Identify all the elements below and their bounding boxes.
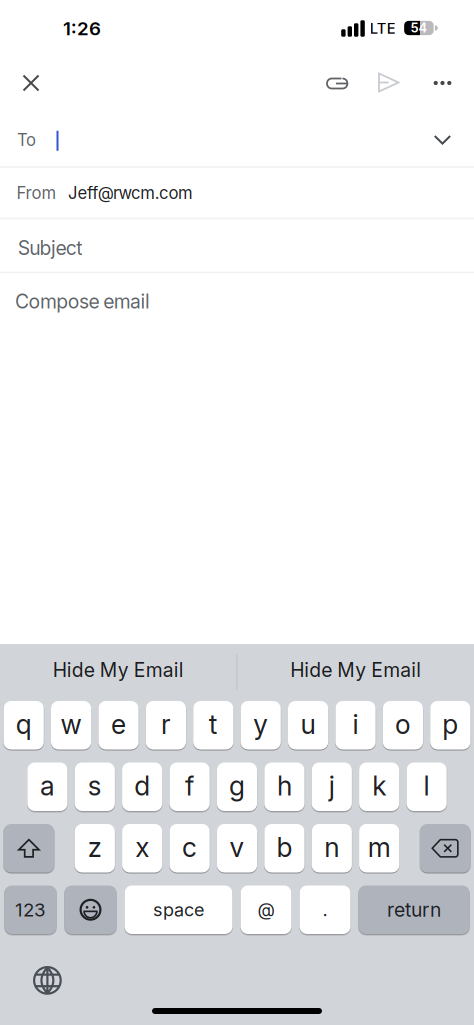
button[interactable]: u (288, 701, 328, 749)
button[interactable]: space (124, 885, 232, 934)
button[interactable]: @ (240, 885, 291, 934)
button[interactable]: d (122, 762, 162, 811)
staticText: x (135, 831, 149, 863)
staticText: To (17, 130, 36, 150)
button[interactable]: l (406, 762, 447, 811)
staticText: b (276, 831, 292, 863)
button[interactable]: o (383, 701, 423, 749)
button[interactable]: p (430, 701, 470, 749)
button[interactable]: w (51, 701, 91, 749)
staticText: LTE (370, 20, 396, 37)
staticText: r (161, 708, 171, 740)
button[interactable]: Compose email (0, 272, 474, 326)
button[interactable]: k (359, 762, 399, 811)
button[interactable]: Numbers (4, 885, 56, 934)
button[interactable]: Hide My Email (237, 644, 474, 700)
staticText: j (329, 770, 335, 802)
staticText: 123 (15, 898, 46, 921)
staticText: d (134, 770, 150, 802)
button[interactable]: x (122, 824, 162, 872)
staticText: . (322, 899, 327, 921)
staticText: m (368, 831, 391, 863)
staticText: g (229, 770, 245, 802)
staticText: k (372, 770, 386, 802)
button[interactable]: a (27, 762, 67, 811)
staticText: l (424, 770, 430, 802)
button[interactable]: t (193, 701, 233, 749)
staticText: f (185, 770, 194, 802)
staticText: @ (257, 899, 274, 921)
button[interactable]: From Jeff@rwcm.com (0, 167, 474, 218)
staticText: From (16, 183, 56, 203)
button[interactable]: Next keyboard (33, 966, 62, 995)
button[interactable]: q (4, 701, 44, 749)
staticText: u (301, 708, 316, 740)
staticText: e (111, 708, 126, 740)
button[interactable]: b (264, 824, 304, 872)
button[interactable]: Return (358, 885, 469, 934)
button[interactable]: Hide My Email (0, 644, 236, 700)
staticText: a (40, 770, 55, 802)
button[interactable]: . (299, 885, 350, 934)
button[interactable]: v (217, 824, 257, 872)
staticText: q (16, 708, 32, 740)
staticText: space (153, 899, 204, 921)
button[interactable]: Subject (0, 218, 474, 272)
staticText: return (387, 898, 441, 921)
button[interactable]: y (241, 701, 281, 749)
button[interactable]: r (146, 701, 186, 749)
button[interactable]: e (98, 701, 139, 749)
button[interactable]: f (169, 762, 210, 811)
button[interactable]: j (312, 762, 352, 811)
button[interactable]: Shift (4, 824, 54, 872)
button[interactable]: Attach file (315, 61, 359, 105)
button[interactable]: h (264, 762, 304, 811)
button[interactable]: z (75, 824, 115, 872)
button[interactable]: Send (366, 60, 410, 104)
staticText: w (61, 708, 82, 740)
staticText: y (253, 708, 268, 740)
button[interactable]: Close (9, 61, 53, 105)
staticText: Hide My Email (290, 658, 421, 682)
staticText: 54 (410, 20, 427, 36)
button[interactable]: i (335, 701, 376, 749)
button[interactable]: g (217, 762, 257, 811)
staticText: Hide My Email (53, 658, 184, 682)
staticText: v (229, 831, 244, 863)
staticText: n (324, 831, 339, 863)
button[interactable]: s (75, 762, 115, 811)
staticText: Jeff@rwcm.com (68, 183, 193, 203)
staticText: p (442, 708, 458, 740)
button[interactable]: n (312, 824, 352, 872)
staticText: Compose email (15, 290, 150, 313)
button[interactable]: Emoji (64, 885, 116, 934)
staticText: o (395, 708, 411, 740)
staticText: Subject (18, 236, 82, 260)
button[interactable]: Delete (420, 824, 470, 872)
button[interactable]: m (359, 824, 399, 872)
staticText: t (209, 708, 218, 740)
staticText: h (277, 770, 292, 802)
staticText: 1:26 (63, 17, 101, 40)
staticText: s (88, 770, 102, 802)
button[interactable]: To (0, 110, 474, 167)
button[interactable]: c (169, 824, 210, 872)
staticText: i (352, 708, 358, 740)
staticText: z (88, 831, 102, 863)
staticText: c (182, 831, 197, 863)
button[interactable]: More options (420, 61, 464, 105)
